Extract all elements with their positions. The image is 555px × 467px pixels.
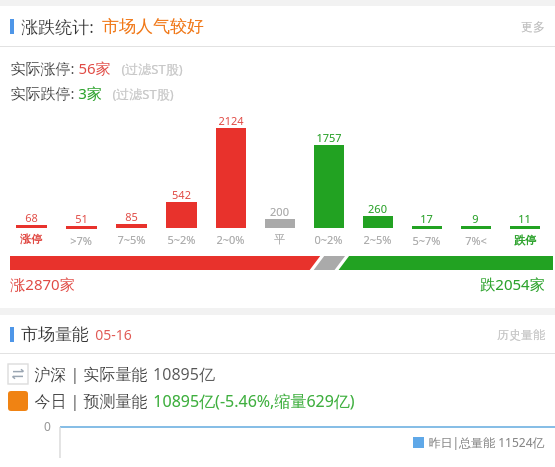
button[interactable]: 200	[255, 113, 304, 246]
staticText: 200	[270, 204, 289, 219]
button[interactable]: 1757	[304, 113, 353, 247]
button[interactable]: 切换	[8, 364, 28, 384]
staticText: 涨2870家	[10, 274, 75, 294]
staticText: 今日 | 预测量能	[34, 390, 148, 412]
staticText: 历史量能	[497, 327, 545, 342]
staticText: 跌停	[514, 233, 536, 247]
staticText: 市场人气较好	[102, 16, 204, 37]
staticText: (过滤ST股)	[112, 85, 174, 103]
button[interactable]: 11	[500, 113, 549, 247]
button[interactable]: 85	[106, 113, 156, 247]
staticText: 68	[25, 210, 38, 225]
staticText: 10895亿(-5.46%,缩量629亿)	[153, 390, 355, 412]
staticText: 沪深 | 实际量能	[34, 363, 148, 385]
staticText: 9	[472, 211, 479, 226]
staticText: 56家	[78, 58, 111, 78]
staticText: 涨跌统计:	[21, 15, 94, 38]
staticText: 实际跌停:	[10, 83, 75, 103]
staticText: 2124	[218, 113, 244, 128]
staticText: 85	[125, 209, 138, 224]
staticText: 市场量能	[21, 324, 89, 345]
staticText: 51	[75, 211, 88, 226]
button[interactable]: 更多	[521, 19, 545, 34]
staticText: 7~5%	[117, 232, 146, 247]
button[interactable]: 17	[402, 113, 451, 247]
staticText: 0	[44, 418, 51, 434]
staticText: 更多	[521, 19, 545, 34]
staticText: 260	[368, 201, 387, 216]
button[interactable]: 2124	[206, 113, 255, 247]
staticText: 7%<	[465, 233, 487, 247]
staticText: 10895亿	[153, 363, 215, 385]
staticText: 实际涨停:	[10, 58, 75, 78]
staticText: 1757	[316, 130, 342, 145]
staticText: 2~5%	[363, 232, 392, 247]
button[interactable]: 9	[451, 113, 500, 247]
staticText: 11	[518, 211, 531, 226]
staticText: 涨停	[20, 232, 42, 246]
staticText: 跌2054家	[480, 274, 545, 294]
staticText: 05-16	[95, 325, 132, 344]
staticText: 3家	[78, 83, 102, 103]
button[interactable]: 历史量能	[497, 327, 545, 342]
staticText: 0~2%	[314, 232, 343, 247]
button[interactable]: 市场量能	[0, 315, 555, 353]
staticText: 17	[420, 211, 433, 226]
staticText: (过滤ST股)	[121, 60, 183, 78]
button[interactable]: 涨跌统计:	[0, 6, 555, 46]
staticText: 平	[274, 232, 285, 246]
staticText: 542	[172, 187, 191, 202]
staticText: 2~0%	[216, 232, 245, 247]
staticText: 昨日|总量能 11524亿	[428, 434, 545, 450]
button[interactable]	[10, 256, 545, 270]
button[interactable]: 51	[56, 113, 106, 247]
staticText: 5~7%	[412, 233, 441, 247]
staticText: 5~2%	[167, 232, 196, 247]
button[interactable]: 68	[6, 113, 56, 246]
staticText: >7%	[70, 233, 92, 247]
button[interactable]: 260	[353, 113, 402, 247]
button[interactable]: 542	[156, 113, 206, 247]
